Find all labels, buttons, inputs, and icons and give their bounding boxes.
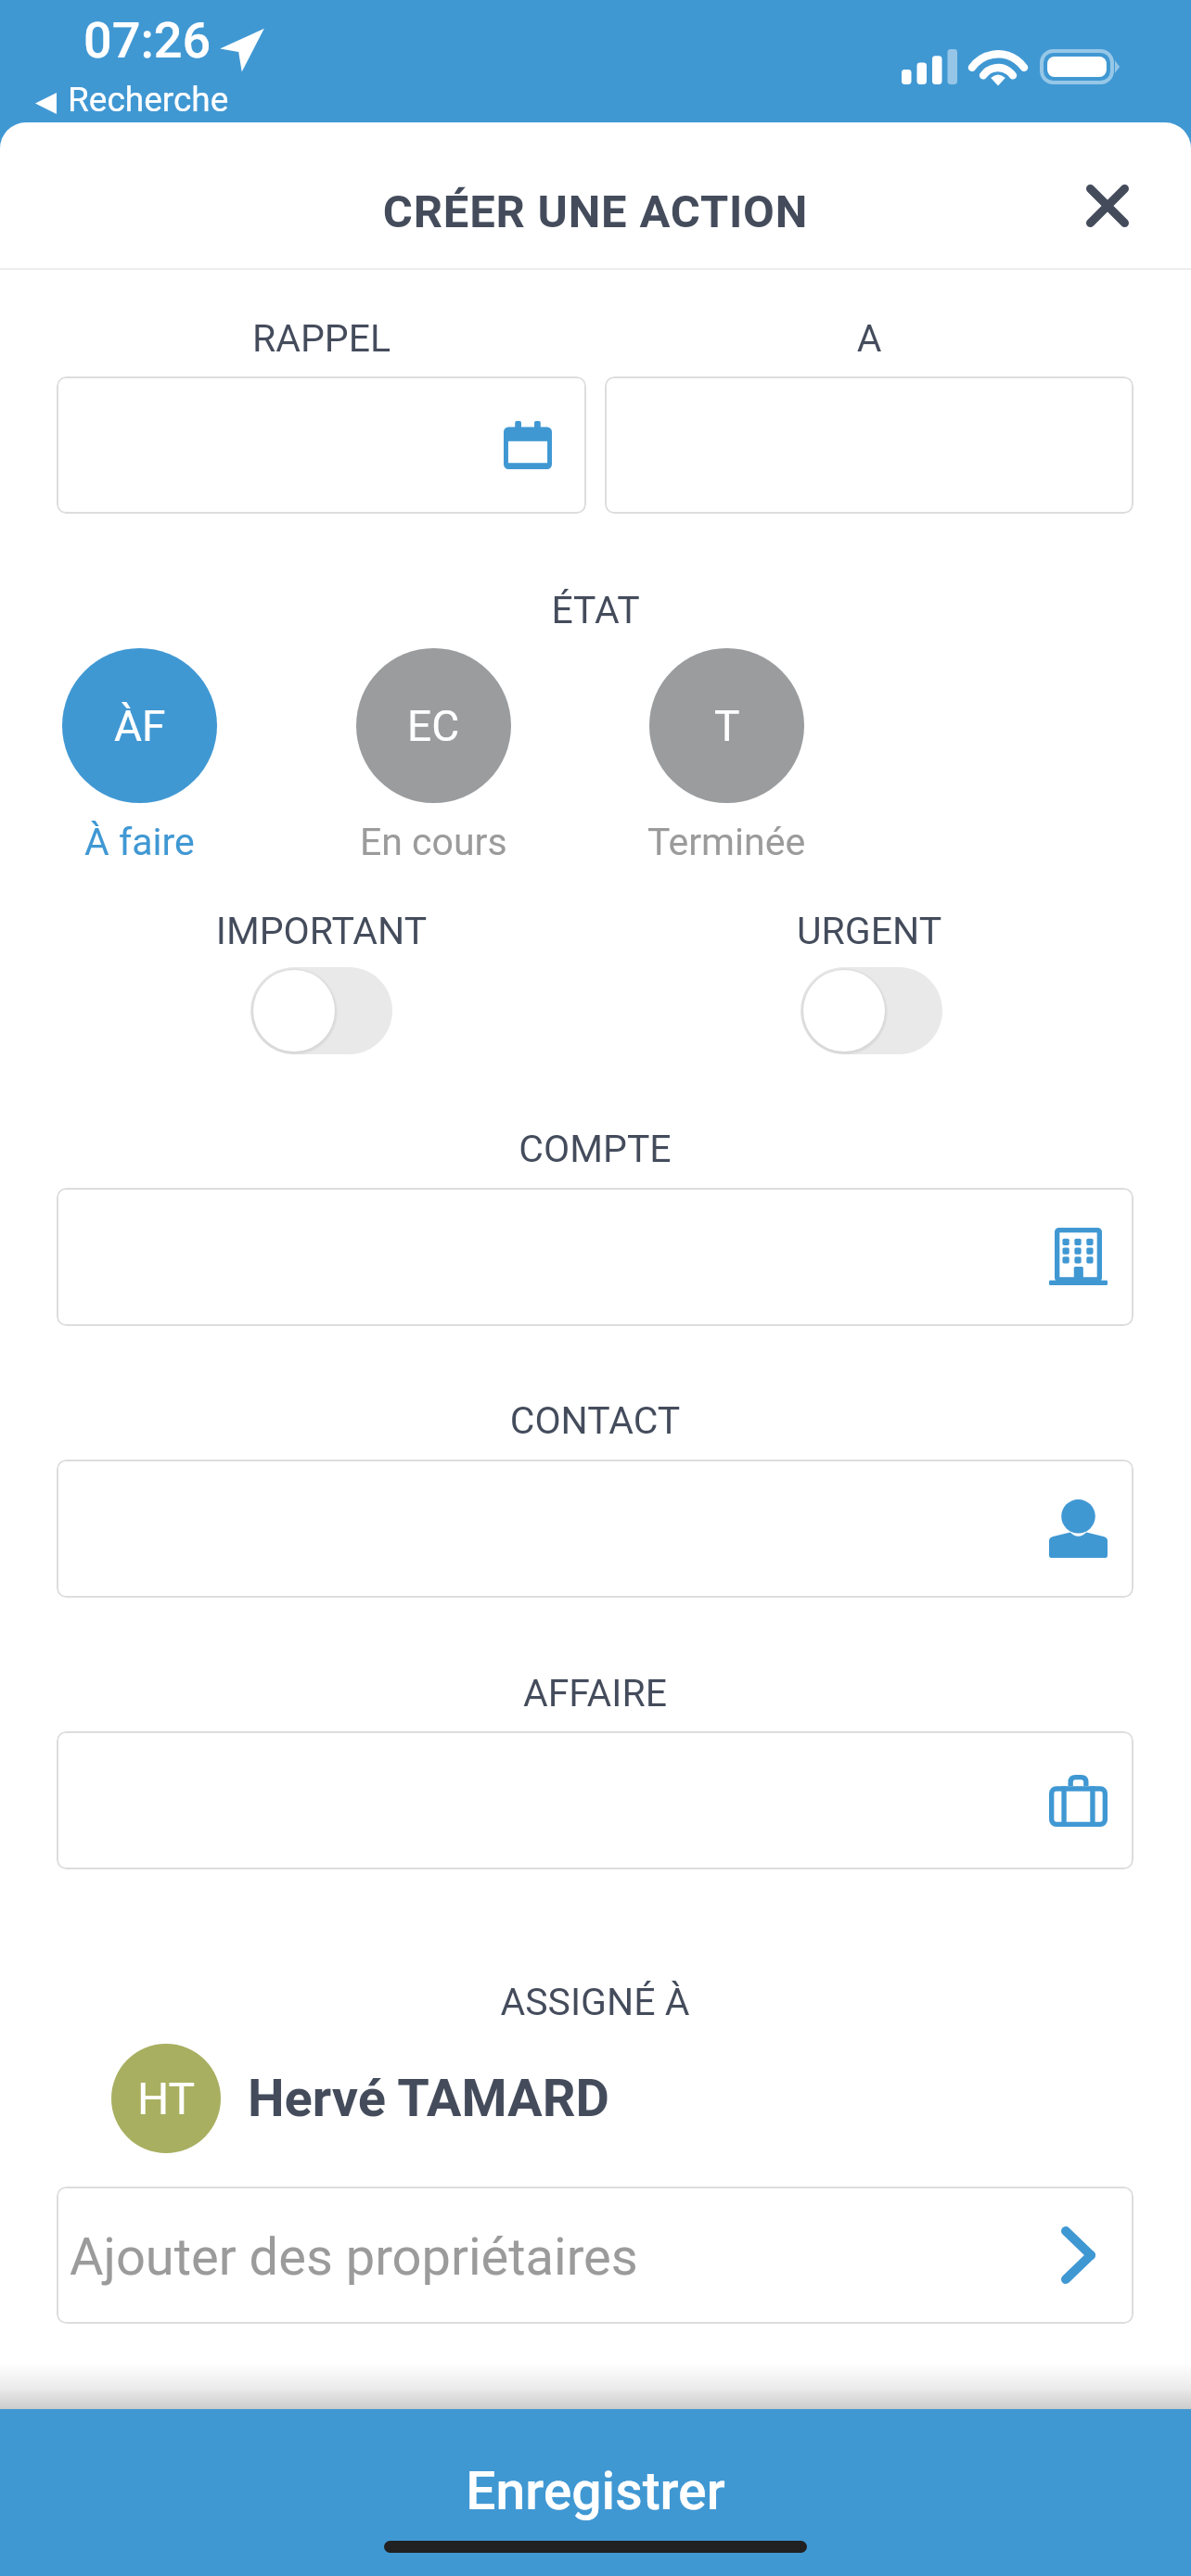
staticText: CONTACT: [57, 1398, 1133, 1443]
staticText: CRÉER UNE ACTION: [0, 185, 1191, 238]
button[interactable]: Ajouter des propriétaires: [57, 2187, 1133, 2324]
staticText: T: [714, 701, 740, 751]
staticText: RAPPEL: [57, 316, 586, 361]
staticText: Terminée: [647, 820, 806, 864]
button[interactable]: Fermer: [1061, 159, 1154, 252]
staticText: ASSIGNÉ À: [57, 1980, 1133, 2024]
staticText: ÀF: [114, 701, 166, 751]
button[interactable]: T: [583, 648, 870, 864]
button[interactable]: A: [605, 376, 1133, 514]
button[interactable]: Important: [250, 967, 392, 1054]
staticText: HT: [137, 2072, 196, 2124]
button[interactable]: Compte: [57, 1188, 1133, 1326]
staticText: URGENT: [605, 909, 1133, 953]
staticText: COMPTE: [57, 1127, 1133, 1171]
staticText: Recherche: [68, 80, 229, 120]
staticText: Ajouter des propriétaires: [70, 2226, 638, 2288]
staticText: 07:26: [83, 11, 211, 70]
staticText: AFFAIRE: [57, 1671, 1133, 1715]
button[interactable]: Urgent: [800, 967, 942, 1054]
staticText: A: [605, 316, 1133, 361]
staticText: ÉTAT: [0, 588, 1191, 632]
staticText: IMPORTANT: [57, 909, 586, 953]
button[interactable]: EC: [289, 648, 577, 864]
staticText: Enregistrer: [0, 2460, 1191, 2522]
button[interactable]: HT: [111, 2044, 609, 2153]
button[interactable]: Rappel: [57, 376, 586, 514]
staticText: Hervé TAMARD: [248, 2068, 609, 2129]
button[interactable]: Enregistrer: [0, 2409, 1191, 2576]
button[interactable]: Contact: [57, 1460, 1133, 1598]
staticText: En cours: [360, 820, 507, 864]
staticText: EC: [407, 701, 460, 751]
button[interactable]: Recherche: [35, 80, 229, 120]
button[interactable]: ÀF: [0, 648, 283, 864]
staticText: À faire: [84, 820, 195, 864]
button[interactable]: Affaire: [57, 1731, 1133, 1869]
